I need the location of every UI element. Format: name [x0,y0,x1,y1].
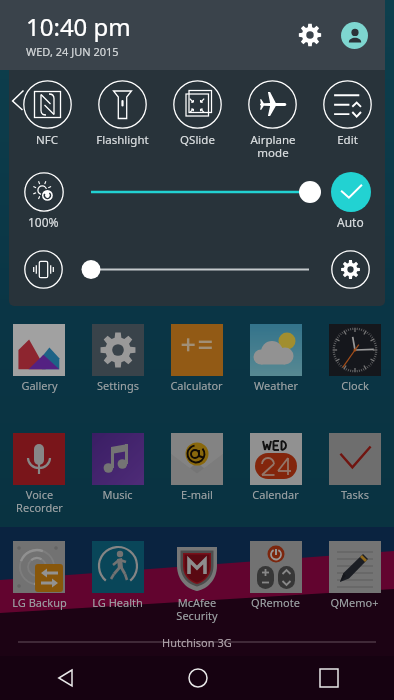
staticText: Clock [341,378,369,393]
staticText: Music [102,487,133,502]
staticText: Weather [254,378,298,393]
button[interactable]: Calendar [236,433,315,502]
button[interactable]: E-mail [157,433,236,502]
staticText: Tasks [341,487,369,502]
staticText: E-mail [181,487,213,502]
button[interactable]: 100% [9,172,78,230]
staticText: Calendar [252,487,299,502]
button[interactable]: Back [0,656,132,700]
staticText: 10:40 pm [26,10,131,43]
button[interactable]: NFC [9,80,85,148]
staticText: QRemote [251,595,300,610]
staticText: Settings [97,378,139,393]
button[interactable]: QRemote [236,541,315,610]
button[interactable]: Weather [236,324,315,393]
staticText: McAfee Security [176,595,218,623]
staticText: QMemo+ [330,595,379,610]
button[interactable]: Home [132,656,263,700]
staticText: Airplane mode [250,132,296,161]
button[interactable]: Music [78,433,157,502]
button[interactable]: Sound settings [316,249,385,290]
button[interactable]: LG Health [78,541,157,610]
staticText: NFC [36,132,58,148]
staticText: WED, 24 JUN 2015 [26,44,119,59]
staticText: LG Backup [12,595,67,610]
button[interactable]: QMemo+ [315,541,394,610]
staticText: Gallery [21,378,58,393]
button[interactable]: Settings [291,16,329,54]
button[interactable]: Voice Recorder [0,433,78,515]
staticText: Flashlight [96,132,149,148]
staticText: Edit [337,132,358,148]
button[interactable]: Sound profile [9,249,78,290]
button[interactable]: McAfee Security [157,541,236,623]
button[interactable]: LG Backup [0,541,78,610]
button[interactable]: Recents [263,656,394,700]
staticText: LG Health [92,595,143,610]
staticText: Hutchison 3G [162,635,232,650]
staticText: QSlide [180,132,215,148]
staticText: Calculator [170,378,223,393]
button[interactable]: User profile [335,16,373,54]
staticText: Voice Recorder [16,487,63,515]
button[interactable]: QSlide [160,80,235,148]
button[interactable]: Clock [315,324,394,393]
staticText: Auto [337,214,364,230]
button[interactable]: Calculator [157,324,236,393]
button[interactable]: Flashlight [85,80,160,148]
button[interactable]: Airplane mode [235,80,310,161]
button[interactable]: Settings [78,324,157,393]
button[interactable]: Edit [310,80,385,148]
button[interactable]: Tasks [315,433,394,502]
button[interactable]: Gallery [0,324,78,393]
staticText: 100% [28,214,59,230]
button[interactable]: Auto [316,172,385,230]
